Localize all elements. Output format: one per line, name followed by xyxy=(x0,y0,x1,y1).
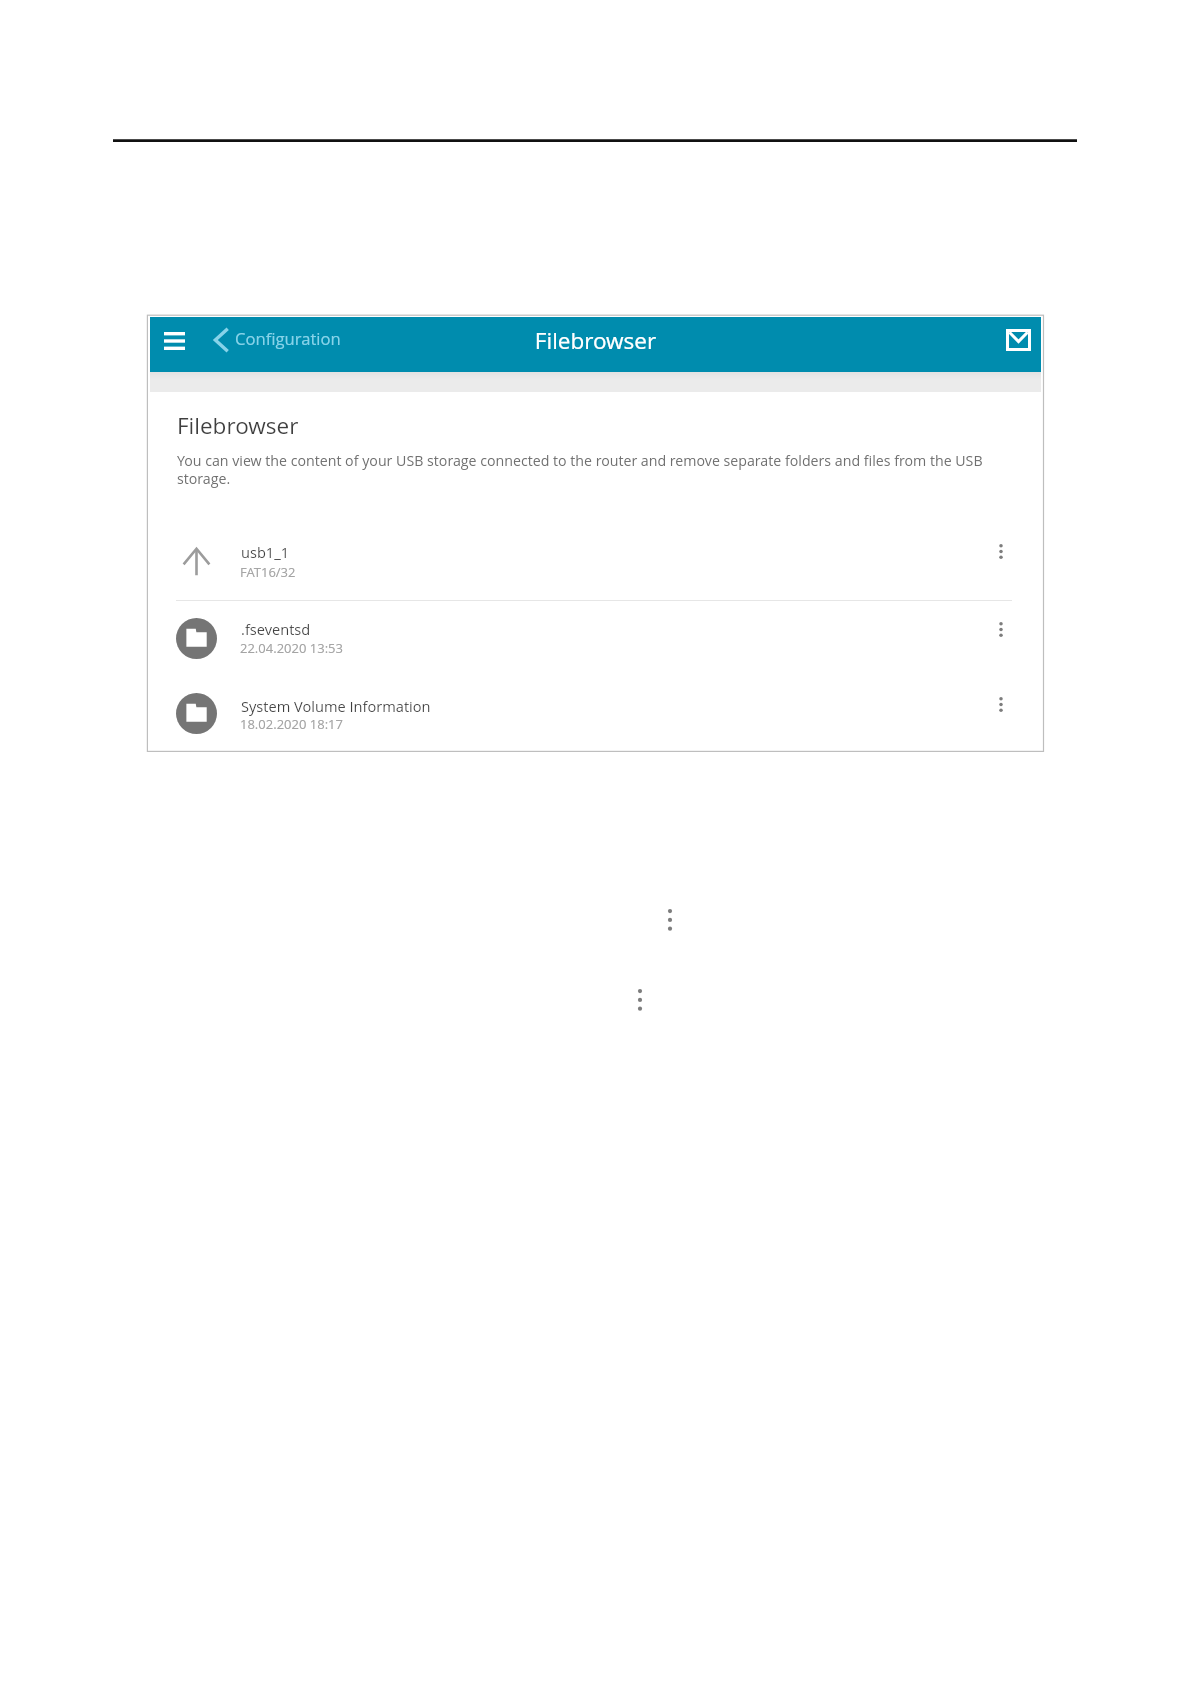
staticText: Filebrowser xyxy=(177,410,299,441)
staticText: 18.02.2020 18:17 xyxy=(240,715,343,733)
button[interactable]: Messages xyxy=(996,321,1040,359)
staticText: Configuration xyxy=(235,327,341,350)
button[interactable]: .fseventsd xyxy=(150,600,1041,677)
staticText: usb1_1 xyxy=(241,542,290,562)
staticText: System Volume Information xyxy=(241,696,431,716)
staticText: FAT16/32 xyxy=(240,563,296,581)
button[interactable]: More options xyxy=(986,689,1016,719)
button[interactable]: More options xyxy=(986,536,1016,566)
button[interactable]: System Volume Information xyxy=(150,675,1041,752)
button[interactable]: Configuration xyxy=(210,322,341,358)
staticText: Filebrowser xyxy=(150,325,1041,356)
button[interactable]: Menu xyxy=(154,322,194,360)
staticText: .fseventsd xyxy=(241,619,311,639)
button[interactable]: usb1_1 xyxy=(150,522,1041,599)
staticText: 22.04.2020 13:53 xyxy=(240,639,343,657)
button[interactable]: More options xyxy=(986,614,1016,644)
staticText: You can view the content of your USB sto… xyxy=(177,451,989,489)
